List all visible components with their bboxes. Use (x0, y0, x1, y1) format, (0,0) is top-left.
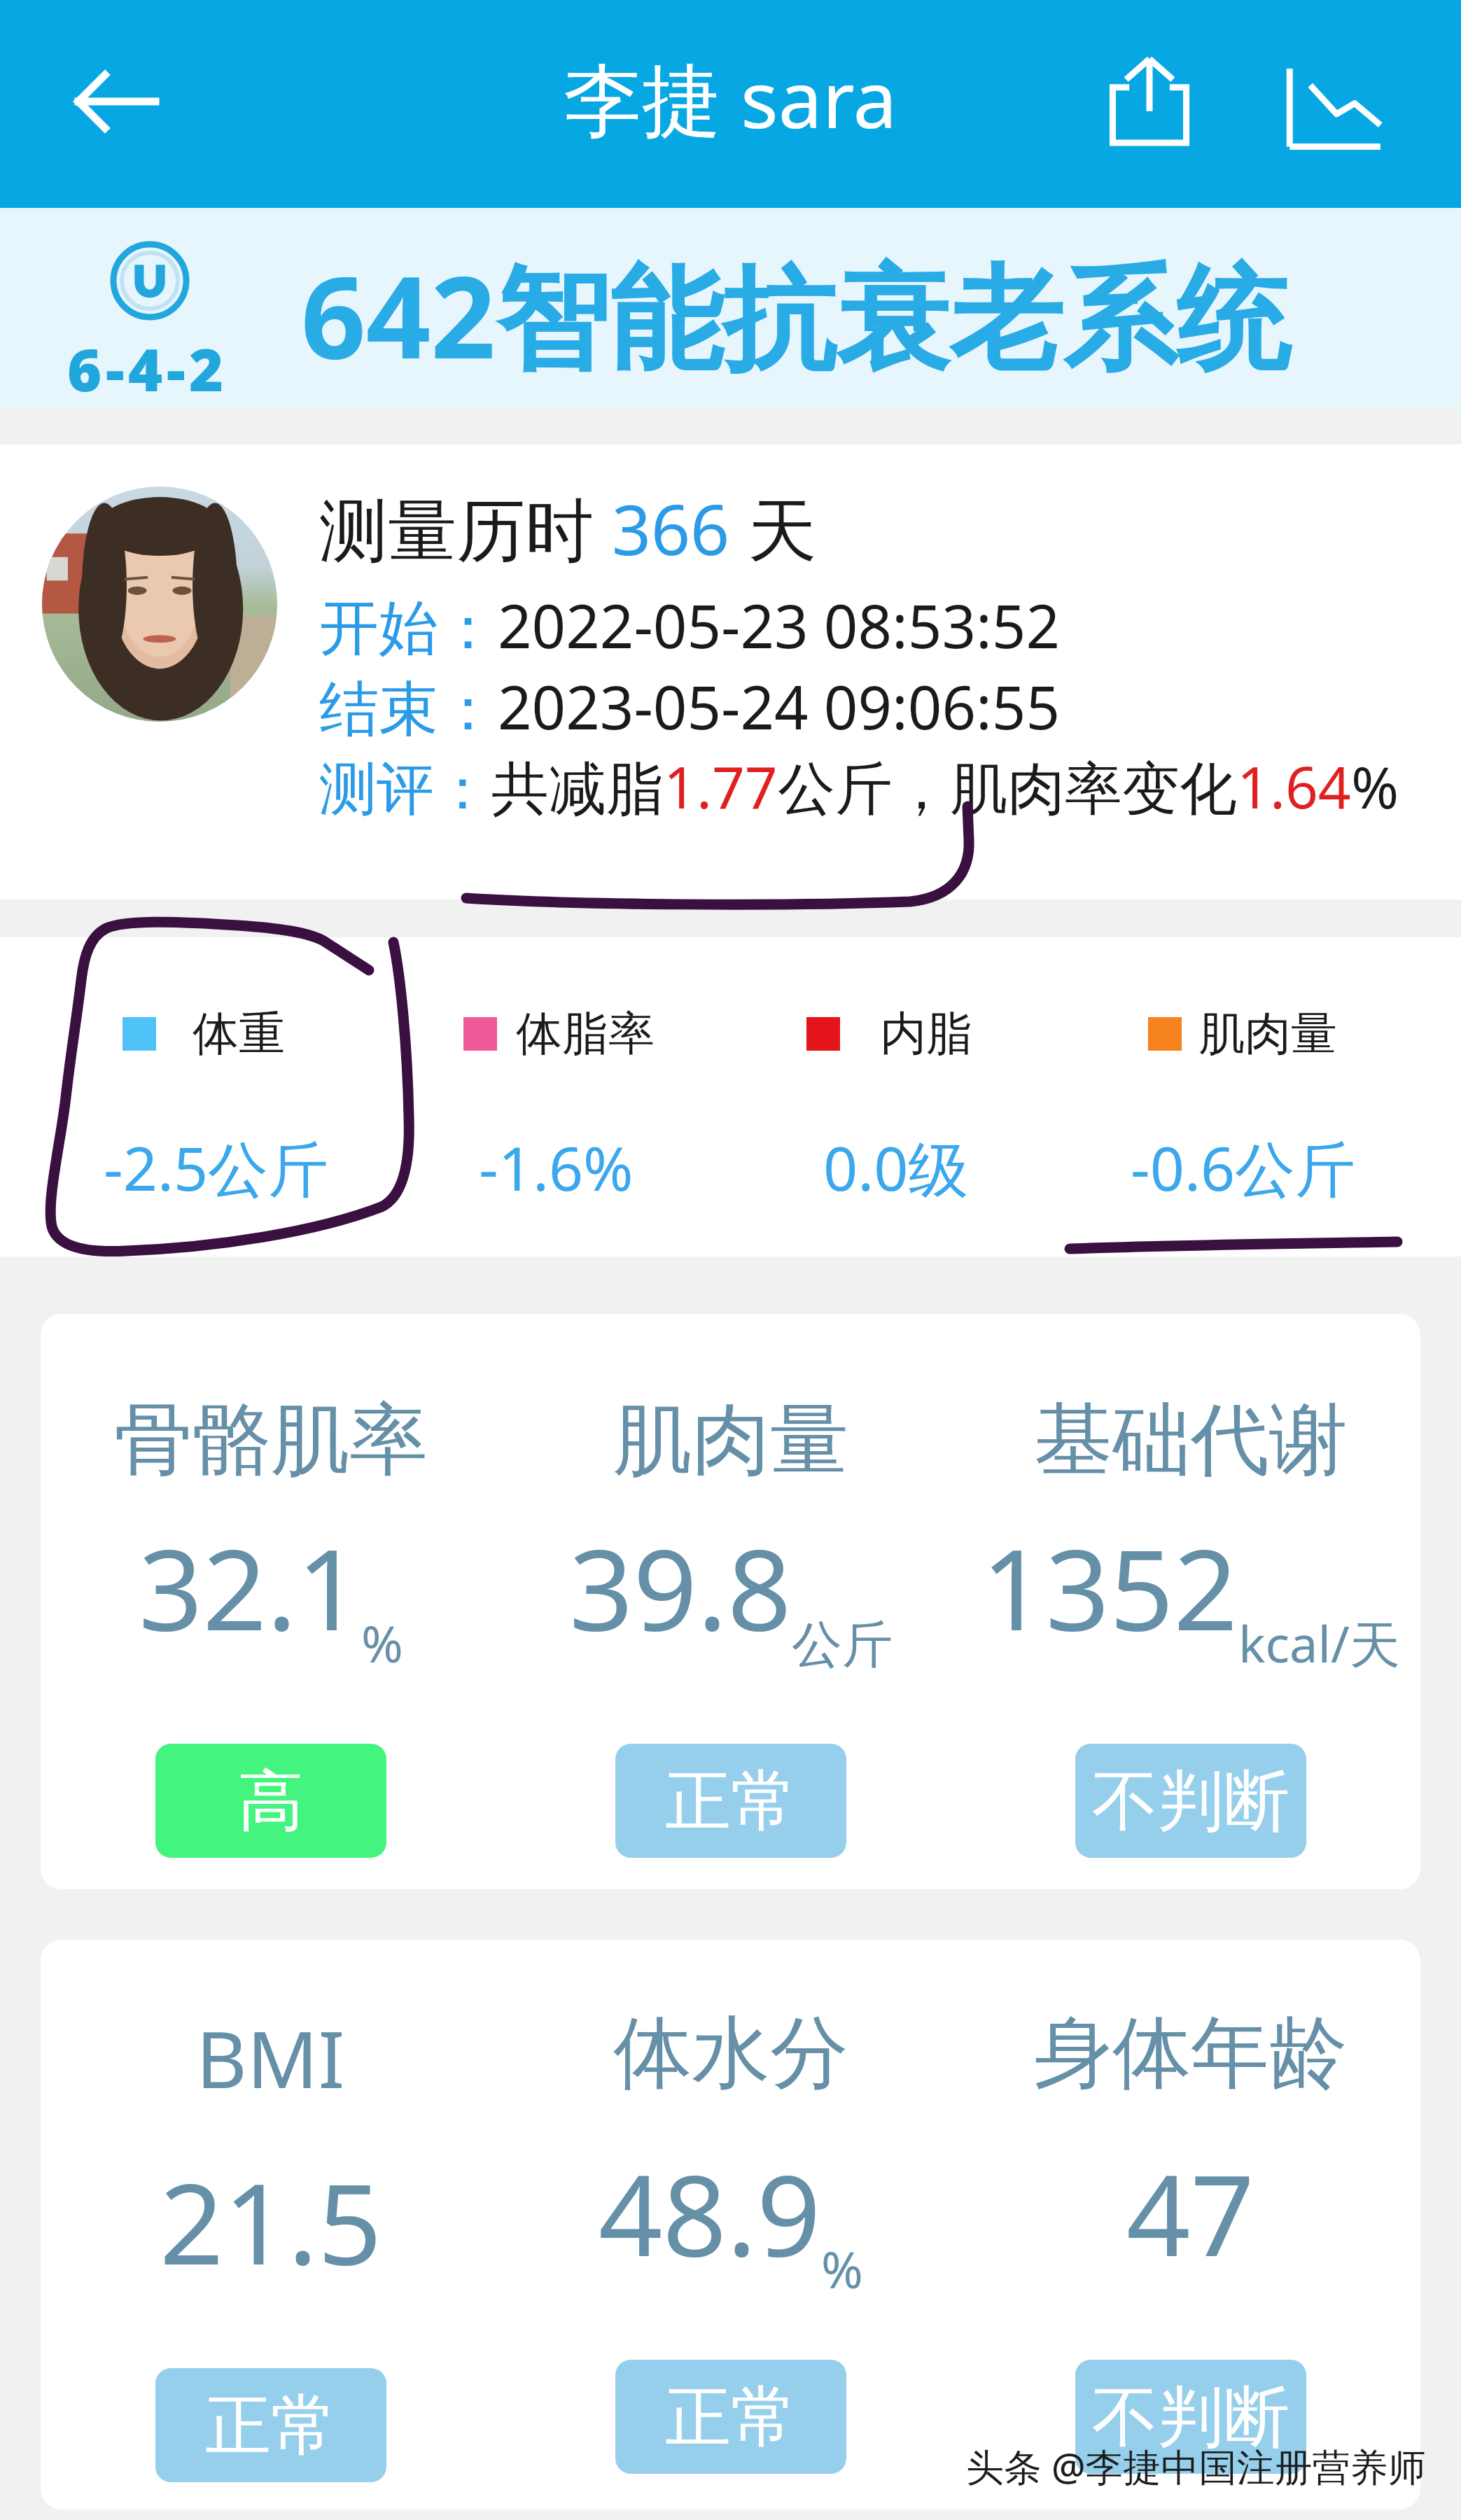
staticText: 正常 (205, 2384, 337, 2467)
staticText: 肌肉量 (613, 1391, 848, 1490)
staticText: 1.64 (1237, 747, 1351, 825)
button[interactable]: 体重 (0, 937, 365, 1256)
staticText: 4 (128, 328, 163, 408)
staticText: 正常 (665, 2376, 797, 2458)
staticText: % (821, 2234, 863, 2303)
button[interactable]: Share (1098, 49, 1201, 153)
staticText: kcal/天 (1238, 1609, 1400, 1677)
staticText: 基础代谢 (1034, 1391, 1348, 1490)
button[interactable]: BMI (41, 1940, 1420, 2509)
staticText: 2 (189, 328, 224, 408)
staticText: 结束： (319, 672, 498, 747)
staticText: -2.5公斤 (104, 1126, 329, 1208)
staticText: -0.6公斤 (1131, 1126, 1356, 1208)
button[interactable]: Profile photo (0, 444, 1461, 899)
staticText: 骨骼肌率 (114, 1391, 428, 1490)
staticText: 体脂率 (516, 1004, 655, 1063)
staticText: 公斤， (778, 753, 950, 825)
staticText: -1.6% (479, 1126, 634, 1208)
staticText: 开始： (319, 591, 498, 666)
staticText: 48.9 (599, 2136, 821, 2289)
button[interactable]: Trend chart (1281, 56, 1382, 157)
button[interactable]: 内脂 (730, 937, 1096, 1256)
staticText: 体重 (193, 1004, 285, 1063)
button[interactable]: 骨骼肌率 (41, 1314, 1420, 1889)
staticText: 不判断 (1092, 1760, 1289, 1842)
button[interactable]: 肌肉量 (1096, 937, 1461, 1256)
staticText: 体水分 (613, 2004, 848, 2103)
staticText: 肌肉率变化 (950, 753, 1237, 825)
staticText: 公斤 (792, 1613, 893, 1677)
button[interactable]: 正常 (615, 1744, 846, 1858)
staticText: 1352 (981, 1511, 1238, 1663)
staticText: 39.8 (569, 1511, 792, 1663)
staticText: BMI (196, 2004, 345, 2111)
staticText: 测评： (319, 753, 491, 825)
staticText: 头条 @李捷中国注册营养师 (966, 2440, 1426, 2492)
staticText: 642智能抗衰老系统 (301, 237, 1289, 392)
staticText: 0.0级 (823, 1126, 969, 1208)
button[interactable]: 正常 (615, 2360, 846, 2474)
staticText: 47 (1126, 2136, 1255, 2289)
staticText: 内脂 (880, 1004, 972, 1063)
staticText: 21.5 (160, 2145, 382, 2297)
staticText: 32.1 (139, 1511, 361, 1663)
staticText: % (361, 1609, 403, 1677)
button[interactable]: 不判断 (1075, 2360, 1306, 2474)
button[interactable]: 体脂率 (365, 937, 730, 1256)
staticText: 共减脂 (491, 753, 664, 825)
button[interactable]: Profile photo (42, 486, 277, 722)
staticText: 天 (730, 481, 817, 575)
staticText: 正常 (665, 1760, 797, 1842)
staticText: % (1351, 747, 1399, 825)
staticText: 高 (238, 1760, 304, 1842)
button[interactable]: 不判断 (1075, 1744, 1306, 1858)
staticText: 6 (67, 328, 102, 408)
staticText: 身体年龄 (1034, 2004, 1348, 2103)
button[interactable]: 正常 (155, 2368, 386, 2482)
button[interactable]: 高 (155, 1744, 386, 1858)
staticText: 2023-05-24 09:06:55 (498, 666, 1061, 747)
staticText: 测量历时 (319, 481, 612, 575)
staticText: - (106, 328, 125, 408)
staticText: 1.77 (664, 747, 778, 825)
staticText: 肌肉量 (1198, 1004, 1337, 1063)
button[interactable]: Back (62, 55, 155, 148)
staticText: - (167, 328, 186, 408)
staticText: 366 (612, 482, 730, 575)
staticText: 不判断 (1092, 2376, 1289, 2458)
staticText: 李捷 sara (564, 44, 897, 151)
staticText: 2022-05-23 08:53:52 (498, 584, 1061, 666)
